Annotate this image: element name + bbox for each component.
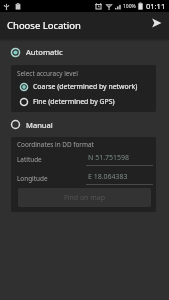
staticText: Fine (determined by GPS) xyxy=(33,97,115,106)
button[interactable]: Coarse (determined by network) xyxy=(11,79,156,94)
button[interactable]: Find on map xyxy=(18,188,151,207)
button[interactable]: Fine (determined by GPS) xyxy=(11,94,156,109)
button[interactable]: Automatic xyxy=(0,43,169,61)
button[interactable]: Send location xyxy=(146,13,166,33)
staticText: N 51.751598 xyxy=(88,153,130,163)
staticText: 100% xyxy=(123,3,136,10)
staticText: Find on map xyxy=(64,193,106,203)
staticText: Manual xyxy=(26,120,53,130)
staticText: Coarse (determined by network) xyxy=(33,82,138,91)
staticText: Coordinates in DD format xyxy=(17,140,94,149)
staticText: Select accuracy level xyxy=(17,69,78,78)
staticText: Longitude xyxy=(17,174,86,183)
staticText: Choose Location xyxy=(7,19,81,32)
staticText: Automatic xyxy=(26,47,63,57)
staticText: Latitude xyxy=(17,155,86,164)
staticText: 01:11 xyxy=(146,1,166,11)
staticText: E 18.064383 xyxy=(88,172,128,182)
button[interactable]: Manual xyxy=(0,116,169,133)
